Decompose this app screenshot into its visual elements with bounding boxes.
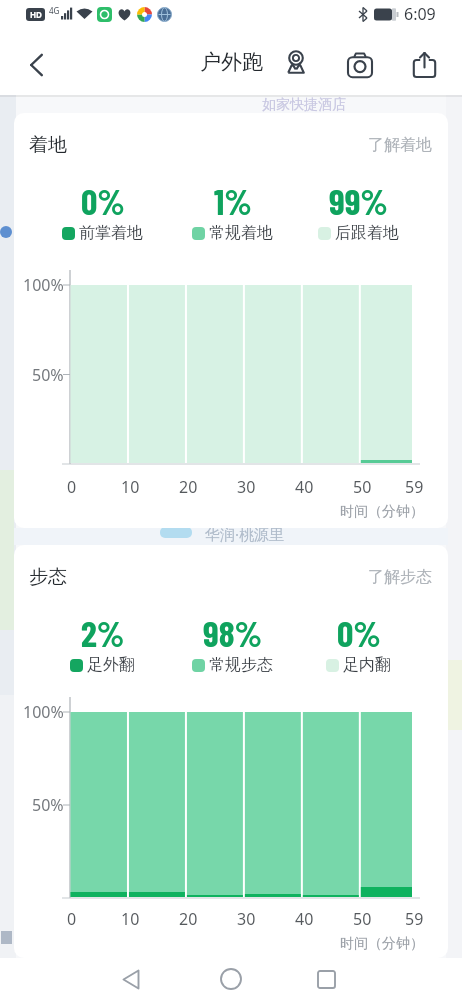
button[interactable]	[404, 44, 444, 84]
button[interactable]	[277, 44, 315, 84]
button[interactable]	[16, 45, 56, 85]
staticText: 30	[237, 476, 256, 498]
staticText: 如家快捷酒店	[262, 96, 346, 114]
staticText: 6:09	[404, 3, 436, 25]
staticText: 着地	[29, 133, 67, 157]
button[interactable]	[306, 959, 346, 999]
staticText: 足内翻	[343, 655, 391, 675]
staticText: 30	[237, 908, 256, 930]
staticText: 足外翻	[87, 655, 135, 675]
staticText: 后跟着地	[335, 223, 399, 243]
staticText: 常规着地	[209, 223, 273, 243]
staticText: 华润·桃源里	[205, 524, 285, 544]
staticText: 4G	[49, 5, 60, 16]
staticText: 50%	[32, 364, 64, 386]
button[interactable]: 了解步态	[332, 566, 432, 588]
button[interactable]	[341, 44, 379, 84]
staticText: 0	[67, 476, 77, 498]
staticText: 0%	[337, 611, 381, 654]
staticText: 10	[121, 908, 140, 930]
staticText: 0	[67, 908, 77, 930]
staticText: 100%	[23, 274, 64, 296]
staticText: 1%	[214, 179, 252, 222]
staticText: 99%	[329, 179, 388, 222]
staticText: 50	[353, 476, 372, 498]
staticText: 时间（分钟）	[340, 935, 424, 953]
button[interactable]	[211, 959, 251, 999]
staticText: 20	[179, 908, 198, 930]
staticText: 100%	[23, 701, 64, 723]
staticText: 户外跑	[200, 49, 263, 75]
staticText: 59	[405, 908, 424, 930]
button[interactable]	[111, 959, 151, 999]
staticText: 10	[121, 476, 140, 498]
staticText: 常规步态	[209, 655, 273, 675]
staticText: 了解步态	[368, 567, 432, 587]
staticText: 0%	[81, 179, 125, 222]
button[interactable]: 了解着地	[332, 134, 432, 156]
staticText: 50%	[32, 794, 64, 816]
staticText: HD	[30, 9, 42, 20]
staticText: 50	[353, 908, 372, 930]
staticText: 步态	[29, 565, 67, 589]
staticText: 40	[295, 476, 314, 498]
staticText: 了解着地	[368, 135, 432, 155]
staticText: 20	[179, 476, 198, 498]
staticText: 时间（分钟）	[340, 503, 424, 521]
staticText: 40	[295, 908, 314, 930]
staticText: 98%	[203, 611, 263, 654]
staticText: 59	[405, 476, 424, 498]
staticText: 前掌着地	[79, 223, 143, 243]
staticText: 2%	[81, 611, 125, 654]
